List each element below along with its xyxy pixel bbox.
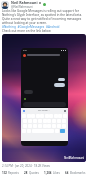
staticText: 2:14 PM · Jan 20, 2024 · 18.2K Views bbox=[2, 164, 50, 168]
button[interactable]: 1,204 bbox=[44, 171, 60, 175]
button[interactable]: Neil Rahmouni bbox=[1, 0, 86, 9]
staticText: Neil Rahmouni bbox=[11, 0, 38, 5]
staticText: Reposts bbox=[8, 171, 19, 175]
staticText: 9:41 bbox=[23, 49, 28, 52]
staticText: Looks like Google Messages is rolling ou… bbox=[2, 9, 86, 25]
button[interactable]: 9:41 bbox=[2, 34, 86, 162]
staticText: Bookmarks bbox=[70, 171, 86, 175]
button[interactable]: #Nothing #GoogleMessages #Android bbox=[2, 25, 60, 29]
staticText: Check out more on the link below bbox=[2, 29, 51, 33]
staticText: 64 bbox=[65, 171, 69, 175]
staticText: @NeilRahmouni bbox=[11, 5, 33, 9]
staticText: 132 bbox=[2, 171, 7, 175]
button[interactable]: 64 bbox=[65, 171, 86, 175]
staticText: Quotes bbox=[29, 171, 39, 175]
staticText: NeilRahmouni bbox=[64, 156, 85, 160]
staticText: GIF Sticker ... bbox=[38, 109, 51, 112]
button[interactable]: Send bbox=[60, 129, 65, 133]
staticText: 28 bbox=[24, 171, 28, 175]
staticText: 1,204 bbox=[44, 171, 52, 175]
staticText: Likes bbox=[53, 171, 60, 175]
button[interactable]: 28 bbox=[24, 171, 39, 175]
button[interactable]: 132 bbox=[2, 171, 19, 175]
